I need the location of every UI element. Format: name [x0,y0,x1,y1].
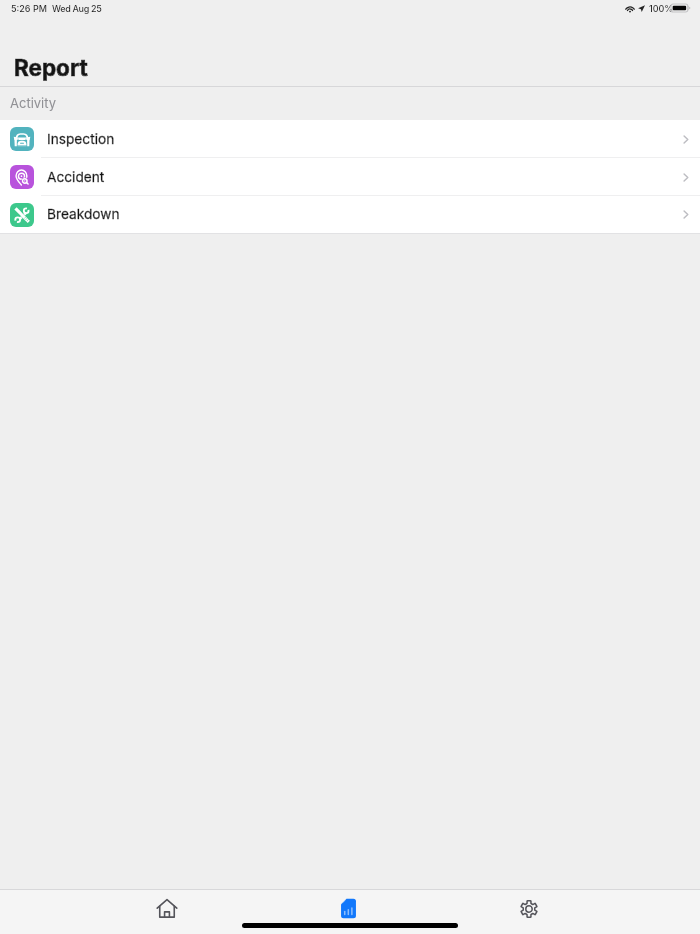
staticText: Inspection [47,131,115,148]
staticText: Breakdown [47,206,120,223]
staticText: Report [14,54,88,81]
staticText: Accident [47,169,105,186]
staticText: Accident [47,169,105,186]
staticText: Activity [10,95,57,111]
button[interactable]: Reports [316,889,380,934]
staticText: 5:26 PM [11,3,47,14]
button[interactable]: Inspection [0,120,700,158]
button[interactable]: Breakdown [0,196,700,233]
staticText: Wed Aug 25 [52,3,102,14]
staticText: Breakdown [47,206,120,223]
staticText: Inspection [47,131,115,148]
button[interactable]: Settings [497,889,561,934]
staticText: 100% [649,3,674,14]
button[interactable]: Home [135,889,199,934]
staticText: Report [14,54,88,81]
button[interactable]: Accident [0,158,700,196]
